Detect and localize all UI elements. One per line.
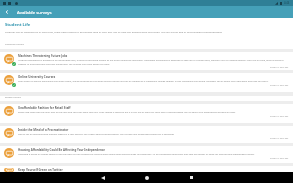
button[interactable]: Unaffordable Fashion for Retail Staff <box>0 104 293 123</box>
button[interactable]: Machines Threatening Future Jobs <box>0 52 293 70</box>
staticText: Keep Yourself Green on Twitter <box>18 168 63 172</box>
staticText: Inside the Mind of a Procrastinator <box>18 128 69 132</box>
staticText: SUBMITTED SURVEYS <box>5 43 25 46</box>
button[interactable]: Inside the Mind of a Procrastinator <box>0 126 293 143</box>
button[interactable]: Online University Courses <box>0 73 293 92</box>
button[interactable]: Keep Yourself Green on Twitter <box>0 166 293 172</box>
staticText: Housing Affordability Could Be Affecting… <box>18 148 106 152</box>
staticText: Available surveys <box>17 9 52 15</box>
staticText: Affording a house in Sydney seems to be … <box>18 153 255 156</box>
button[interactable]: Recent apps <box>169 172 213 183</box>
staticText: Machines Threatening Future Jobs <box>18 54 68 58</box>
staticText: Online University Courses <box>18 75 56 79</box>
staticText: Artificial intelligence is growing at an… <box>18 59 289 65</box>
button[interactable]: Back <box>81 172 125 183</box>
staticText: 4:44 <box>284 1 290 5</box>
staticText: Retail staff often get the short end of … <box>18 111 236 114</box>
staticText: One of my all time favourite internet vi… <box>18 133 175 136</box>
staticText: Posted 17 days ago <box>270 66 289 69</box>
button[interactable]: Housing Affordability Could Be Affecting… <box>0 146 293 163</box>
button[interactable]: Back <box>0 6 14 18</box>
staticText: Posted 17 days ago <box>270 115 289 118</box>
staticText: Whether you're studying full or part tim… <box>5 30 223 33</box>
button[interactable]: Home <box>125 172 169 183</box>
staticText: Posted 17 days ago <box>270 157 289 160</box>
staticText: Posted 17 days ago <box>270 84 289 87</box>
staticText: EXPIRED SURVEYS <box>5 96 22 99</box>
staticText: Student Life <box>5 22 31 28</box>
staticText: Unaffordable Fashion for Retail Staff <box>18 106 71 110</box>
staticText: With access to almost everything you wan… <box>18 80 269 83</box>
staticText: Posted 17 days ago <box>270 137 289 140</box>
